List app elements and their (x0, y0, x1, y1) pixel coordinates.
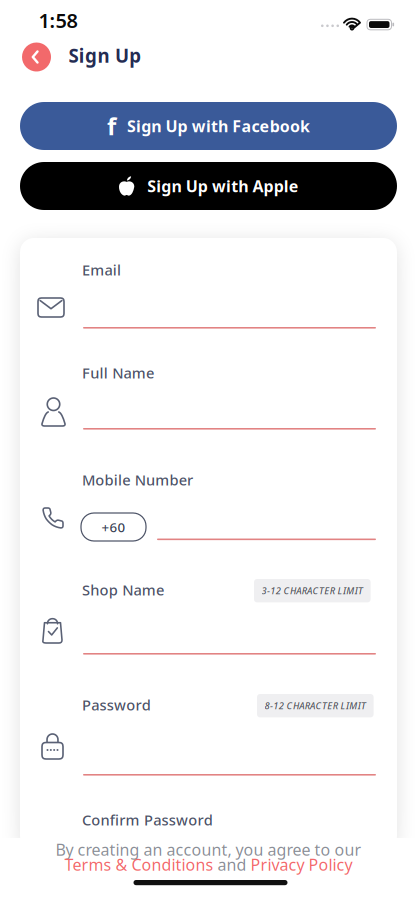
staticText: Terms & Conditions (64, 854, 213, 875)
button[interactable]: f (20, 102, 397, 150)
button[interactable]: Back (22, 42, 51, 71)
staticText: f (107, 110, 116, 142)
staticText: Privacy Policy (250, 854, 352, 875)
staticText: 1:58 (38, 7, 77, 34)
staticText: 3-12 CHARACTER LIMIT (261, 584, 363, 597)
staticText: Sign Up with Facebook (127, 115, 310, 137)
staticText: 8-12 CHARACTER LIMIT (264, 699, 366, 712)
staticText: Password (82, 695, 151, 714)
staticText: Confirm Password (82, 810, 213, 829)
button[interactable]: Sign Up with Apple (20, 162, 397, 210)
button[interactable]: Terms & Conditions (64, 854, 213, 875)
staticText: Sign Up (68, 43, 141, 68)
staticText: and (217, 854, 246, 875)
staticText: Full Name (82, 363, 154, 382)
staticText: Sign Up with Apple (147, 175, 299, 197)
button[interactable]: Country code (81, 513, 146, 541)
staticText: Email (82, 260, 121, 279)
staticText: +60 (101, 518, 125, 536)
staticText: By creating an account, you agree to our (55, 839, 361, 860)
staticText: Shop Name (82, 580, 164, 599)
button[interactable]: Privacy Policy (250, 854, 352, 875)
staticText: Mobile Number (82, 470, 193, 489)
